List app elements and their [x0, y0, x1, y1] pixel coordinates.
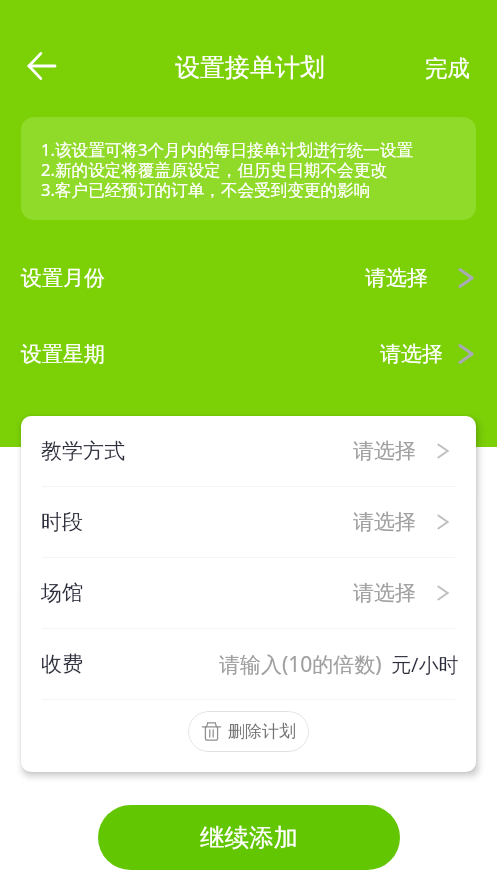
staticText: 请选择: [353, 438, 416, 464]
button[interactable]: 场馆: [21, 558, 476, 628]
staticText: 请选择: [365, 265, 428, 291]
staticText: 元/小时: [391, 651, 459, 678]
staticText: 请选择: [353, 509, 416, 535]
staticText: 时段: [41, 509, 83, 535]
staticText: 1.该设置可将3个月内的每日接单计划进行统一设置 2.新的设定将覆盖原设定，但历…: [41, 138, 413, 201]
button[interactable]: 教学方式: [21, 416, 476, 486]
staticText: 场馆: [41, 580, 83, 606]
button[interactable]: 删除计划: [188, 711, 309, 752]
staticText: 请选择: [353, 580, 416, 606]
button[interactable]: 设置星期: [0, 319, 497, 389]
button[interactable]: 时段: [21, 487, 476, 557]
staticText: 请输入(10的倍数): [219, 650, 382, 679]
staticText: 请选择: [380, 341, 443, 367]
button[interactable]: 收费: [21, 629, 476, 699]
button[interactable]: 完成: [409, 44, 486, 92]
staticText: 设置星期: [21, 341, 105, 367]
staticText: 继续添加: [200, 822, 298, 853]
button[interactable]: Back: [14, 38, 69, 93]
button[interactable]: 继续添加: [98, 805, 400, 870]
staticText: 收费: [41, 651, 83, 677]
staticText: 教学方式: [41, 438, 125, 464]
staticText: 完成: [425, 54, 470, 82]
button[interactable]: 设置月份: [0, 243, 497, 313]
staticText: 删除计划: [228, 721, 296, 742]
staticText: 设置月份: [21, 265, 105, 291]
staticText: 设置接单计划: [175, 52, 325, 83]
